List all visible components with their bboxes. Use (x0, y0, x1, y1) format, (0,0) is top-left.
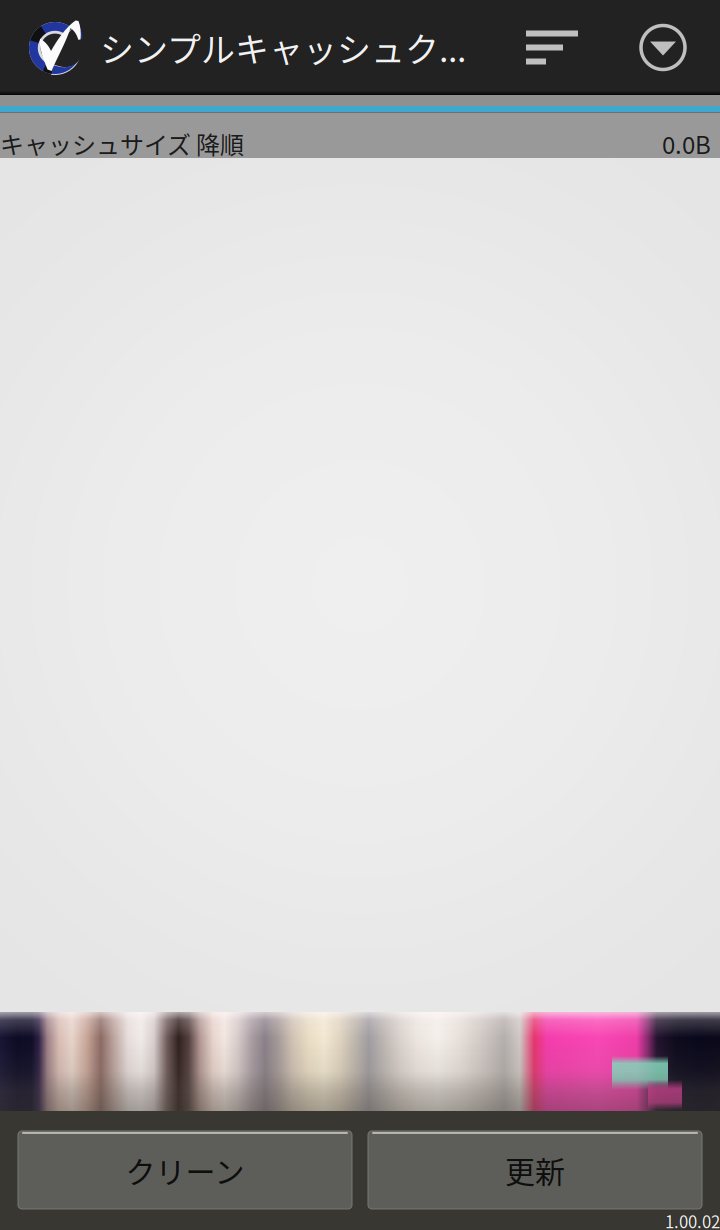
staticText: 0.0B (662, 126, 711, 161)
button[interactable]: 更新 (368, 1131, 702, 1209)
staticText: 1.00.02 (665, 1209, 720, 1230)
button[interactable]: Sort (504, 0, 608, 95)
button[interactable]: クリーン (18, 1131, 352, 1209)
staticText: 更新 (505, 1148, 565, 1192)
staticText: クリーン (125, 1148, 244, 1192)
button[interactable]: More options (608, 0, 720, 95)
staticText: キャッシュサイズ 降順 (0, 126, 244, 161)
staticText: シンプルキャッシュク... (100, 23, 466, 72)
